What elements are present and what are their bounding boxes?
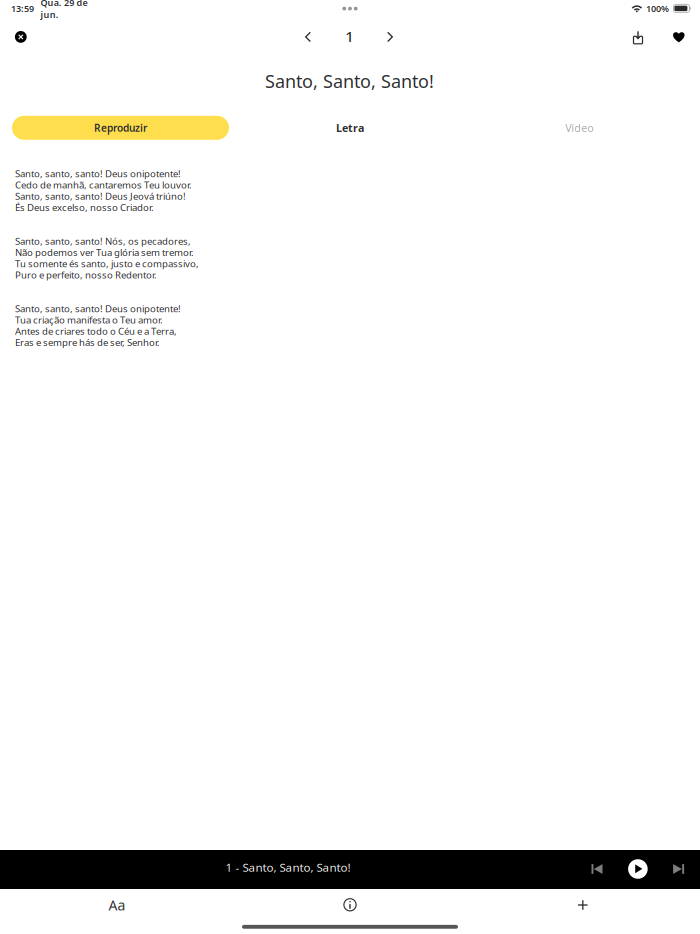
- button[interactable]: Próximo hino: [376, 23, 404, 51]
- staticText: Tua criação manifesta o Teu amor.: [15, 313, 163, 326]
- button[interactable]: Vídeo: [499, 116, 659, 140]
- button[interactable]: Reproduzir: [12, 116, 229, 140]
- staticText: Antes de criares todo o Céu e a Terra,: [15, 325, 177, 337]
- button[interactable]: Fechar: [6, 23, 36, 51]
- staticText: Santo, santo, santo! Deus onipotente!: [15, 302, 181, 315]
- staticText: Reproduzir: [94, 121, 147, 135]
- button[interactable]: Faixa anterior: [582, 854, 612, 884]
- staticText: 1: [345, 26, 354, 46]
- staticText: Qua. 29 de jun.: [40, 0, 88, 20]
- staticText: 100%: [646, 2, 669, 14]
- staticText: Eras e sempre hás de ser, Senhor.: [15, 336, 160, 348]
- staticText: Tu somente és santo, justo e compassivo,: [15, 257, 199, 270]
- button[interactable]: Aa: [87, 890, 147, 920]
- staticText: 13:59: [11, 2, 34, 14]
- button[interactable]: Baixar: [624, 23, 652, 51]
- staticText: Cedo de manhã, cantaremos Teu louvor.: [15, 178, 192, 191]
- button[interactable]: Hino anterior: [294, 23, 322, 51]
- staticText: Puro e perfeito, nosso Redentor.: [15, 268, 157, 281]
- staticText: Aa: [108, 896, 125, 914]
- button[interactable]: Adicionar: [563, 890, 603, 920]
- staticText: És Deus excelso, nosso Criador.: [15, 201, 154, 213]
- staticText: Santo, santo, santo! Deus onipotente!: [15, 167, 181, 180]
- button[interactable]: 1 - Santo, Santo, Santo!: [138, 848, 438, 887]
- button[interactable]: Favorito: [665, 23, 693, 51]
- staticText: 1 - Santo, Santo, Santo!: [225, 860, 350, 875]
- staticText: Não podemos ver Tua glória sem tremor.: [15, 246, 194, 258]
- staticText: Santo, santo, santo! Nós, os pecadores,: [15, 235, 191, 247]
- staticText: Letra: [336, 121, 364, 135]
- staticText: Vídeo: [565, 121, 593, 135]
- button[interactable]: Letra: [270, 116, 430, 140]
- button[interactable]: Informações: [330, 890, 370, 920]
- button[interactable]: Próxima faixa: [664, 854, 694, 884]
- button[interactable]: 1: [330, 22, 370, 50]
- staticText: Santo, Santo, Santo!: [265, 69, 434, 93]
- staticText: Santo, santo, santo! Deus Jeová triúno!: [15, 190, 186, 202]
- button[interactable]: Reproduzir: [623, 854, 653, 884]
